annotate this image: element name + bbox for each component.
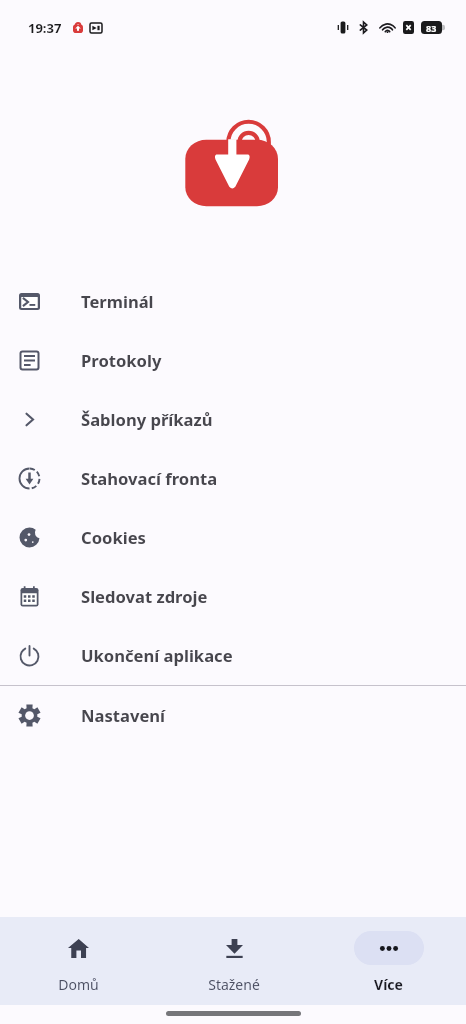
- staticText: Stahovací fronta: [81, 467, 218, 490]
- staticText: Domů: [58, 975, 99, 994]
- staticText: Terminál: [81, 290, 154, 313]
- staticText: Více: [374, 975, 403, 994]
- staticText: Protokoly: [81, 349, 162, 372]
- button[interactable]: Sledovat zdroje: [0, 567, 466, 626]
- button[interactable]: Více: [311, 917, 466, 1005]
- staticText: Cookies: [81, 526, 146, 549]
- button[interactable]: Protokoly: [0, 331, 466, 390]
- button[interactable]: Nastavení: [0, 686, 466, 745]
- staticText: 83: [426, 22, 437, 34]
- button[interactable]: Terminál: [0, 272, 466, 331]
- staticText: Ukončení aplikace: [81, 644, 233, 667]
- button[interactable]: Cookies: [0, 508, 466, 567]
- staticText: Nastavení: [81, 704, 166, 727]
- button[interactable]: Stahovací fronta: [0, 449, 466, 508]
- button[interactable]: Šablony příkazů: [0, 390, 466, 449]
- staticText: Sledovat zdroje: [81, 585, 208, 608]
- staticText: Šablony příkazů: [81, 408, 213, 431]
- staticText: Stažené: [208, 975, 260, 994]
- button[interactable]: Domů: [0, 917, 156, 1005]
- button[interactable]: Ukončení aplikace: [0, 626, 466, 685]
- staticText: 19:37: [28, 19, 62, 37]
- button[interactable]: Stažené: [156, 917, 311, 1005]
